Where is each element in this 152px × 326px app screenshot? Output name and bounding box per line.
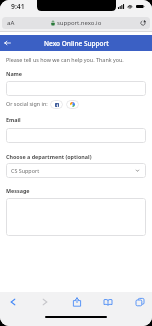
button[interactable]: Tabs [130, 294, 149, 310]
staticText: Or social sign in: [6, 100, 48, 107]
staticText: aA [7, 19, 15, 27]
staticText: 9:41 [11, 2, 25, 11]
button[interactable]: Sign in with Google [66, 100, 79, 109]
staticText: Choose a department (optional) [6, 153, 92, 160]
staticText: Please tell us how we can help you. Than… [6, 56, 124, 63]
button[interactable] [6, 128, 146, 143]
button[interactable]: Back [0, 35, 14, 51]
staticText: CS Support [11, 167, 40, 174]
button[interactable] [6, 198, 146, 236]
button[interactable]: Sign in with Facebook [50, 100, 63, 109]
button[interactable]: CS Support [6, 163, 146, 178]
button[interactable]: Bookmarks [98, 294, 117, 310]
button[interactable] [6, 81, 146, 96]
staticText: Name [6, 70, 23, 77]
staticText: Email [6, 116, 21, 123]
button[interactable]: Reload [135, 17, 150, 29]
button[interactable]: Back [3, 294, 22, 310]
staticText: Nexo Online Support [44, 39, 109, 48]
button[interactable]: aA [2, 17, 150, 29]
button[interactable]: Share [67, 294, 86, 310]
staticText: Message [6, 187, 30, 194]
button[interactable]: Forward [35, 294, 54, 310]
staticText: support.nexo.io [57, 19, 102, 27]
